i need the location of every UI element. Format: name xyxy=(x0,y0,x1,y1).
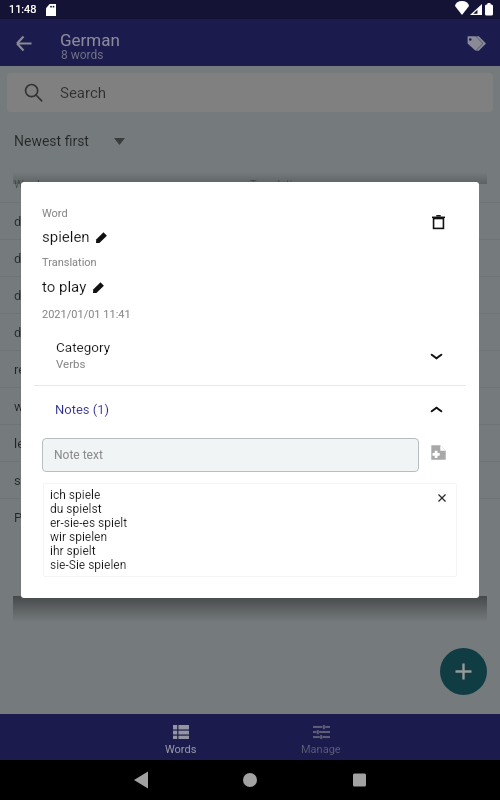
button[interactable]: wissen xyxy=(0,388,500,424)
button[interactable]: Papier xyxy=(0,499,500,535)
staticText: lernen xyxy=(14,436,250,451)
button[interactable]: Note text xyxy=(42,438,419,472)
staticText: reden xyxy=(14,362,250,377)
staticText: the house xyxy=(250,251,486,266)
staticText: the car xyxy=(250,214,486,229)
staticText: to talk xyxy=(250,362,486,377)
staticText: die Katze xyxy=(14,325,250,340)
button[interactable]: Newest first xyxy=(8,127,131,155)
staticText: Translation xyxy=(42,256,97,269)
button[interactable]: Words xyxy=(111,714,251,760)
staticText: spielen xyxy=(14,473,250,488)
staticText: sie-Sie spielen xyxy=(50,558,127,572)
button[interactable]: Remove note xyxy=(429,485,455,511)
staticText: 11:48 xyxy=(9,3,37,16)
staticText: German xyxy=(60,30,120,50)
button[interactable]: die Katze xyxy=(0,314,500,350)
staticText: der Hund xyxy=(14,288,250,303)
staticText: Papier xyxy=(14,510,250,525)
staticText: wissen xyxy=(14,399,250,414)
staticText: 2021/01/01 11:41 xyxy=(42,308,131,321)
staticText: Manage xyxy=(301,743,341,756)
staticText: the dog xyxy=(250,288,486,303)
button[interactable]: Notes (1) xyxy=(21,386,479,416)
staticText: Notes (1) xyxy=(55,402,110,417)
button[interactable]: reden xyxy=(0,351,500,387)
staticText: to learn xyxy=(250,436,486,451)
button[interactable]: Delete xyxy=(423,206,454,237)
staticText: Newest first xyxy=(14,133,89,149)
staticText: ich spiele xyxy=(50,488,101,502)
staticText: Verbs xyxy=(56,357,86,370)
staticText: to know xyxy=(250,399,486,414)
button[interactable]: das Auto xyxy=(0,203,500,239)
staticText: spielen xyxy=(42,228,90,246)
staticText: Words xyxy=(165,743,197,756)
staticText: 8 words xyxy=(61,48,104,62)
button[interactable]: das Haus xyxy=(0,240,500,276)
staticText: Word xyxy=(42,207,68,220)
staticText: das Auto xyxy=(14,214,250,229)
button[interactable]: lernen xyxy=(0,425,500,461)
button[interactable]: Add note xyxy=(423,437,453,467)
staticText: paper xyxy=(250,510,486,525)
staticText: Search xyxy=(60,84,107,102)
staticText: Note text xyxy=(54,448,103,462)
button[interactable]: Tags xyxy=(456,23,496,63)
button[interactable]: der Hund xyxy=(0,277,500,313)
staticText: das Haus xyxy=(14,251,250,266)
staticText: ihr spielt xyxy=(50,544,96,558)
button[interactable]: Search xyxy=(7,73,493,112)
staticText: wir spielen xyxy=(50,530,108,544)
staticText: the cat xyxy=(250,325,486,340)
staticText: er-sie-es spielt xyxy=(50,516,128,530)
button[interactable]: Add word xyxy=(440,648,487,695)
staticText: Word xyxy=(14,178,250,191)
button[interactable]: Manage xyxy=(251,714,391,760)
staticText: to play xyxy=(250,473,486,488)
staticText: to play xyxy=(42,278,87,296)
staticText: Translation xyxy=(250,178,486,191)
staticText: du spielst xyxy=(50,502,102,516)
staticText: Category xyxy=(56,339,111,355)
button[interactable]: Category xyxy=(21,329,479,385)
button[interactable]: Back xyxy=(4,23,44,63)
button[interactable]: spielen xyxy=(0,462,500,498)
